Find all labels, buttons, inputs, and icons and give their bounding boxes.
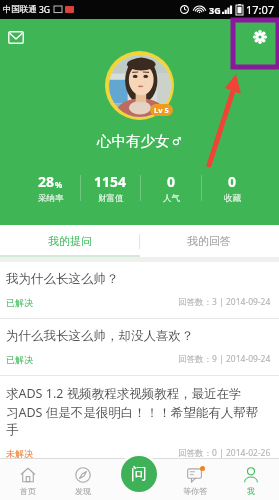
staticText: 28 — [38, 172, 55, 191]
staticText: 1154 — [94, 172, 127, 191]
button[interactable]: 1154 — [81, 172, 140, 204]
staticText: 为什么我长这么帅，却没人喜欢？ — [6, 328, 194, 344]
staticText: ♂ — [172, 135, 182, 148]
staticText: 回答数：0 | 2014-02-26 — [178, 447, 271, 459]
staticText: 心中有少女 — [97, 132, 170, 150]
button[interactable]: 求ADS 1.2 视频教程求视频教程，最近在学 习ADS 但是不是很明白！！！希… — [0, 376, 279, 470]
staticText: 我的回答 — [187, 234, 231, 248]
staticText: 未解决 — [6, 448, 33, 459]
staticText: 回答数：3 | 2014-09-24 — [178, 296, 271, 308]
staticText: 已解决 — [6, 354, 33, 365]
button[interactable]: Messages — [4, 25, 28, 49]
staticText: 发现 — [75, 486, 91, 496]
button[interactable]: 28 — [21, 172, 80, 204]
staticText: 等你答 — [183, 486, 207, 496]
staticText: 首页 — [20, 486, 36, 496]
staticText: 求ADS 1.2 视频教程求视频教程，最近在学 习ADS 但是不是很明白！！！希… — [6, 385, 259, 438]
button[interactable]: Settings — [248, 25, 272, 49]
button[interactable]: 首页 — [0, 458, 55, 500]
staticText: 人气 — [163, 193, 180, 204]
staticText: 财富值 — [98, 193, 124, 204]
button[interactable]: 我为什么长这么帅？ — [0, 262, 279, 319]
staticText: 已解决 — [6, 297, 33, 308]
button[interactable]: 为什么我长这么帅，却没人喜欢？ — [0, 319, 279, 376]
staticText: 3G — [209, 4, 221, 16]
staticText: 3G — [39, 4, 51, 16]
button[interactable]: 0 — [202, 172, 262, 204]
button[interactable]: 0 — [141, 172, 201, 204]
staticText: 我为什么长这么帅？ — [6, 271, 119, 287]
button[interactable]: 发现 — [55, 458, 111, 500]
button[interactable]: 我 — [223, 458, 279, 500]
button[interactable]: 我的提问 — [0, 225, 139, 257]
staticText: 收藏 — [224, 193, 241, 204]
staticText: 采纳率 — [38, 193, 64, 204]
staticText: 我 — [247, 486, 255, 496]
staticText: 17:07 — [246, 2, 275, 17]
staticText: % — [55, 179, 63, 190]
button[interactable]: 等你答 — [167, 458, 223, 500]
button[interactable]: 我的回答 — [139, 225, 279, 257]
staticText: 0 — [167, 172, 176, 191]
button[interactable]: 问 — [121, 456, 157, 492]
staticText: 中国联通 — [3, 4, 37, 15]
staticText: 0 — [228, 172, 237, 191]
staticText: 回答数：9 | 2014-09-24 — [178, 353, 271, 365]
staticText: Lv 5 — [154, 105, 169, 115]
staticText: 我的提问 — [48, 234, 92, 248]
staticText: 问 — [131, 464, 147, 484]
